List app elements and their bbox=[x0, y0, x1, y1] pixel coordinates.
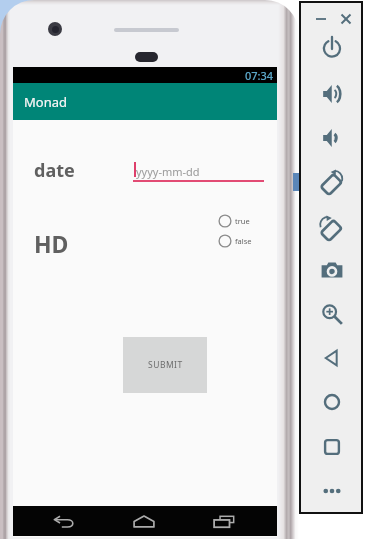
button[interactable]: true bbox=[217, 213, 250, 229]
button[interactable]: false bbox=[217, 233, 252, 249]
button[interactable]: Back bbox=[319, 345, 345, 371]
staticText: date bbox=[34, 158, 75, 183]
button[interactable]: SUBMIT bbox=[123, 337, 207, 393]
button[interactable]: Take screenshot bbox=[319, 257, 345, 283]
button[interactable]: Overview bbox=[319, 434, 345, 460]
staticText: SUBMIT bbox=[148, 359, 183, 371]
staticText: false bbox=[235, 236, 252, 246]
staticText: Monad bbox=[24, 93, 67, 111]
button[interactable]: Recent apps bbox=[210, 506, 237, 536]
button[interactable]: Home bbox=[130, 506, 157, 536]
button[interactable]: Power bbox=[319, 34, 345, 60]
staticText: 07:34 bbox=[245, 68, 274, 83]
button[interactable]: More bbox=[319, 478, 345, 504]
button[interactable]: Rotate left bbox=[319, 170, 345, 196]
button[interactable]: Close bbox=[337, 10, 355, 28]
button[interactable]: Home bbox=[319, 389, 345, 415]
button[interactable]: Back bbox=[50, 506, 77, 536]
button[interactable]: Monad bbox=[13, 83, 277, 120]
button[interactable]: Minimize bbox=[312, 10, 330, 28]
button[interactable]: Zoom bbox=[319, 301, 345, 327]
staticText: yyyy-mm-dd bbox=[136, 164, 200, 179]
button[interactable]: Volume down bbox=[319, 125, 345, 151]
button[interactable]: Volume up bbox=[319, 81, 345, 107]
button[interactable]: Rotate right bbox=[319, 216, 345, 242]
staticText: HD bbox=[34, 228, 69, 259]
staticText: true bbox=[235, 216, 250, 226]
